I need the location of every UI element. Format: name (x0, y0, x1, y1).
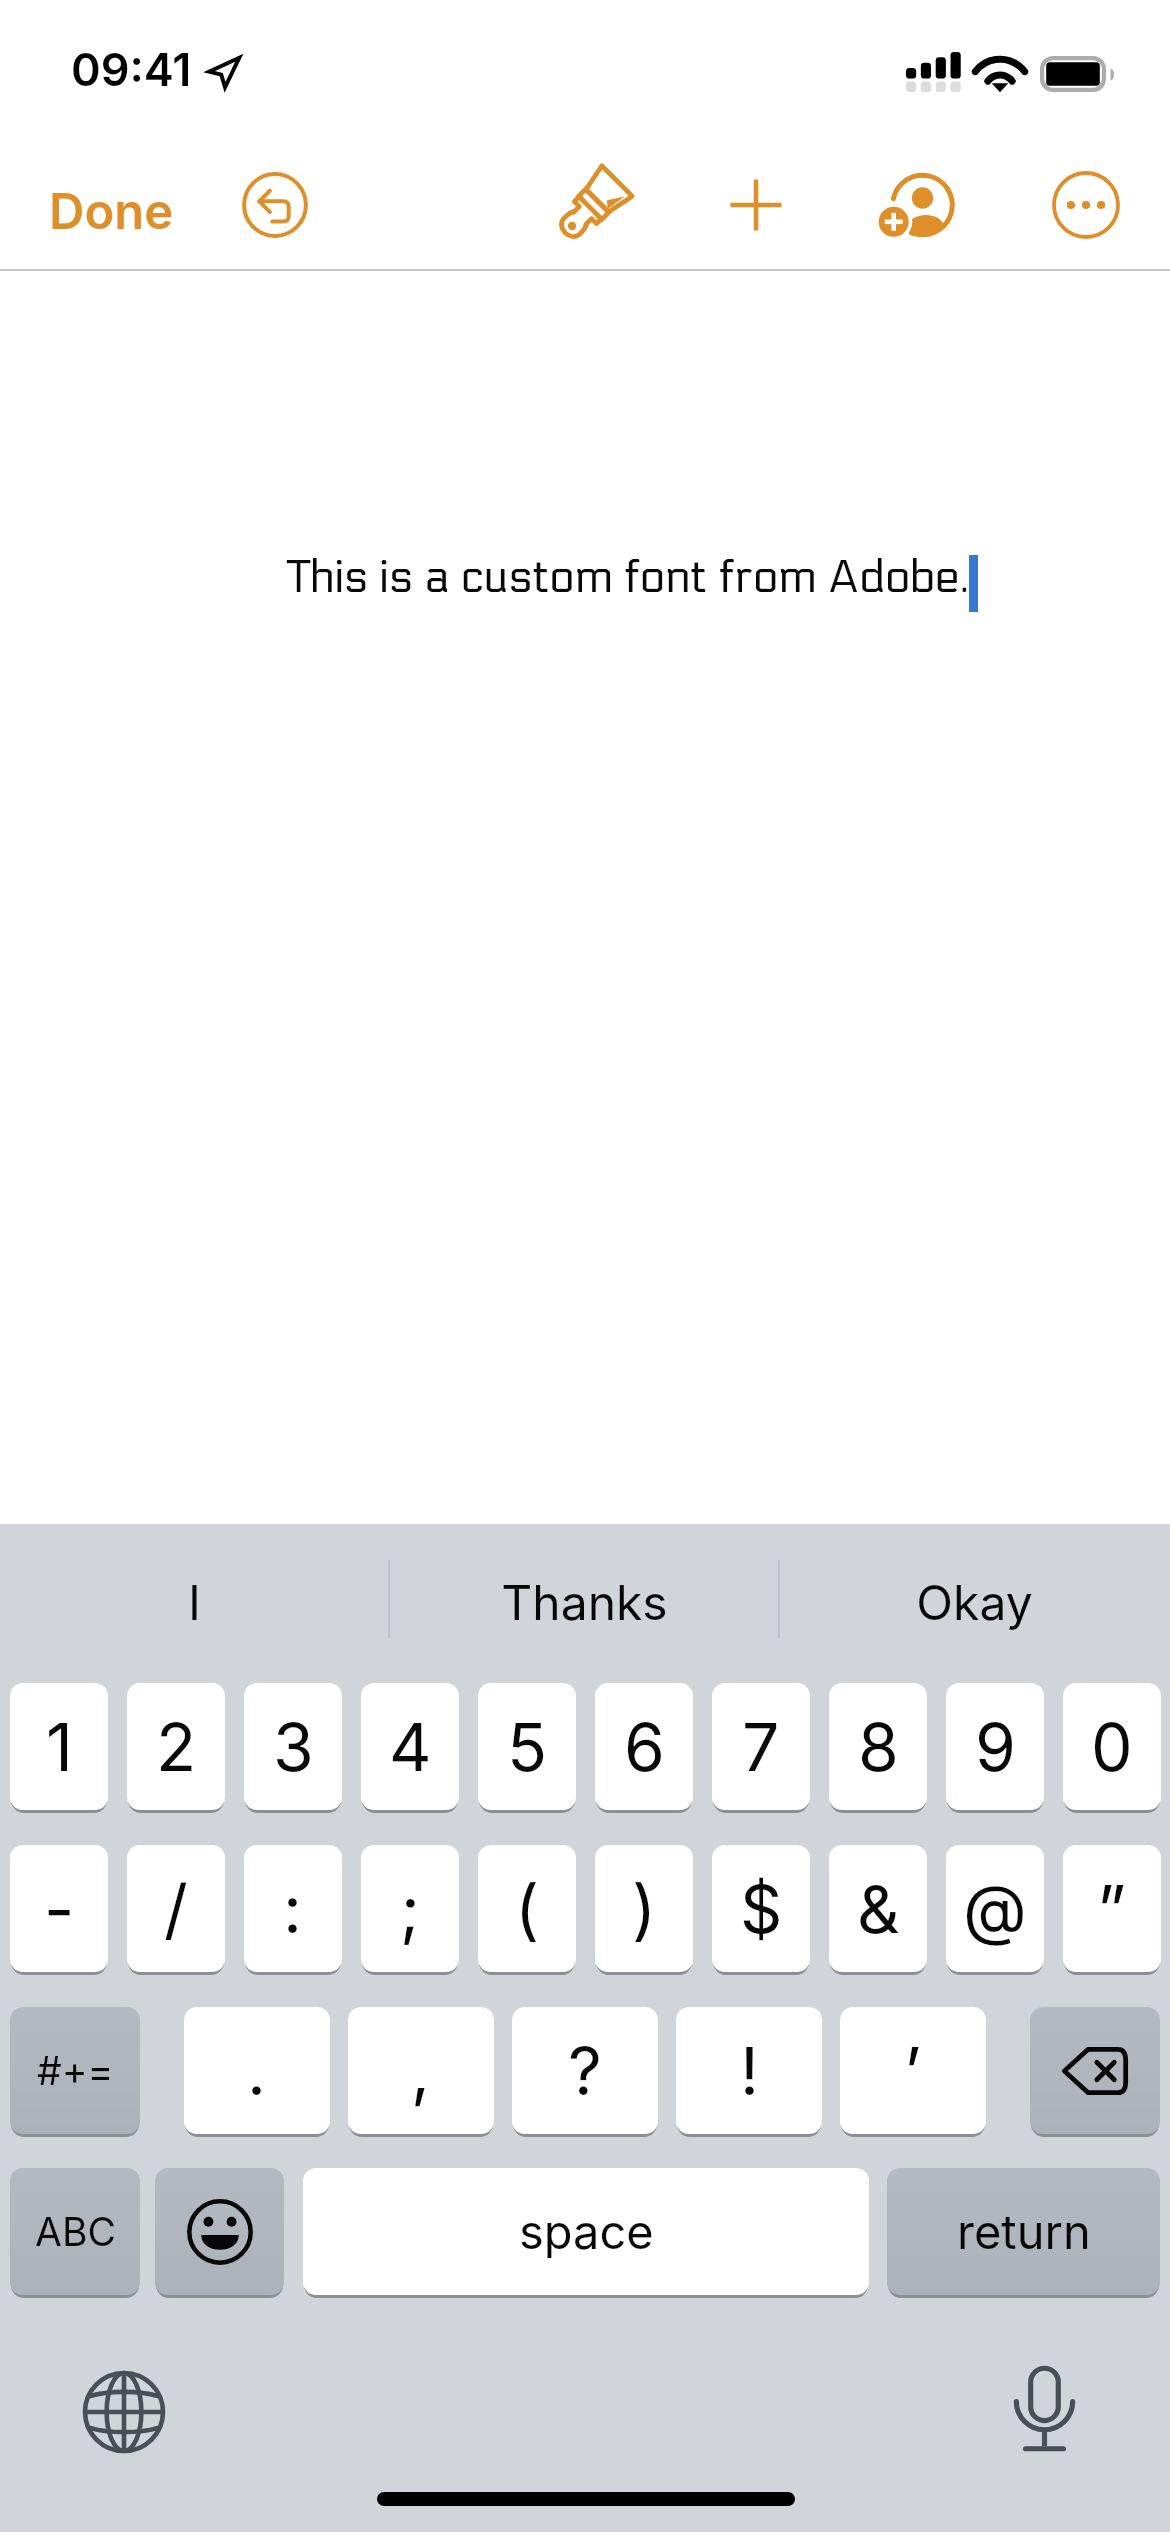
staticText: , (411, 2031, 431, 2111)
staticText: I (188, 1573, 201, 1631)
button[interactable]: space (303, 2168, 869, 2295)
button[interactable]: Switch keyboard (74, 2362, 174, 2462)
button[interactable]: Done (31, 164, 191, 258)
button[interactable]: Thanks (389, 1524, 779, 1679)
button[interactable]: 3 (244, 1683, 342, 1810)
button[interactable]: - (10, 1845, 108, 1972)
staticText: $ (740, 1869, 783, 1949)
button[interactable]: ? (512, 2007, 658, 2134)
button[interactable]: ; (361, 1845, 459, 1972)
button[interactable]: : (244, 1845, 342, 1972)
staticText: 0 (1091, 1707, 1133, 1787)
staticText: space (519, 2203, 654, 2260)
button[interactable]: ABC (10, 2168, 140, 2295)
staticText: ( (515, 1869, 540, 1949)
staticText: Thanks (501, 1573, 668, 1631)
staticText: 6 (624, 1707, 665, 1787)
staticText: ABC (35, 2208, 116, 2255)
button[interactable]: Add attachment (706, 155, 806, 255)
staticText: : (283, 1869, 303, 1949)
button[interactable]: ( (478, 1845, 576, 1972)
staticText: #+= (37, 2047, 114, 2094)
staticText: 9 (975, 1707, 1016, 1787)
button[interactable]: 4 (361, 1683, 459, 1810)
staticText: 8 (858, 1707, 899, 1787)
button[interactable]: ’ (840, 2007, 986, 2134)
staticText: ! (740, 2031, 759, 2111)
staticText: ” (1097, 1869, 1127, 1949)
staticText: Done (49, 182, 174, 241)
staticText: @ (963, 1869, 1027, 1949)
button[interactable]: Okay (779, 1524, 1170, 1679)
staticText: Okay (916, 1573, 1033, 1631)
button[interactable]: @ (946, 1845, 1044, 1972)
staticText: ’ (904, 2031, 922, 2111)
staticText: 2 (156, 1707, 197, 1787)
button[interactable]: ) (595, 1845, 693, 1972)
staticText: ? (568, 2031, 602, 2111)
button[interactable]: 9 (946, 1683, 1044, 1810)
button[interactable]: 2 (127, 1683, 225, 1810)
staticText: return (957, 2203, 1091, 2260)
button[interactable]: Undo (225, 155, 325, 255)
button[interactable]: / (127, 1845, 225, 1972)
button[interactable]: Markup (543, 155, 643, 255)
button[interactable]: return (887, 2168, 1160, 2295)
staticText: / (164, 1869, 188, 1949)
staticText: 09:41 (71, 42, 192, 96)
staticText: - (44, 1869, 75, 1949)
staticText: & (857, 1869, 900, 1949)
button[interactable]: ” (1063, 1845, 1161, 1972)
button[interactable]: 6 (595, 1683, 693, 1810)
button[interactable]: Emoji (155, 2168, 284, 2295)
button[interactable]: 0 (1063, 1683, 1161, 1810)
button[interactable]: . (184, 2007, 330, 2134)
button[interactable]: I (0, 1524, 389, 1679)
staticText: 1 (46, 1707, 73, 1787)
button[interactable]: 8 (829, 1683, 927, 1810)
staticText: 4 (389, 1707, 432, 1787)
staticText: 5 (507, 1707, 548, 1787)
button[interactable]: Dictate (987, 2355, 1102, 2470)
staticText: 3 (273, 1707, 314, 1787)
button[interactable]: ! (676, 2007, 822, 2134)
staticText: ) (632, 1869, 657, 1949)
button[interactable]: & (829, 1845, 927, 1972)
staticText: 7 (742, 1707, 780, 1787)
button[interactable]: , (348, 2007, 494, 2134)
button[interactable]: 5 (478, 1683, 576, 1810)
button[interactable]: 7 (712, 1683, 810, 1810)
button[interactable]: More (1036, 155, 1136, 255)
button[interactable]: 1 (10, 1683, 108, 1810)
staticText: This is a custom font from Adobe. (287, 551, 969, 604)
button[interactable]: #+= (10, 2007, 140, 2134)
button[interactable]: Delete (1030, 2007, 1160, 2134)
staticText: ; (400, 1869, 420, 1949)
button[interactable]: Add people (871, 155, 971, 255)
button[interactable]: $ (712, 1845, 810, 1972)
staticText: . (247, 2031, 267, 2111)
